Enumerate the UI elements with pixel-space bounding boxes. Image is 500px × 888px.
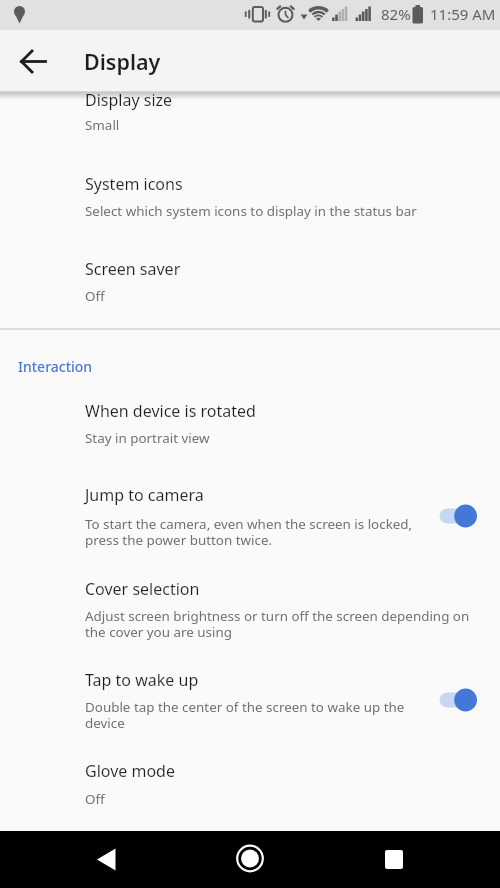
staticText: Tap to wake up [85,669,199,691]
staticText: To start the camera, even when the scree… [85,515,413,549]
staticText: 82% [381,4,411,24]
button[interactable]: Display size [0,91,500,149]
staticText: Off [85,287,105,305]
staticText: 11:59 AM [430,4,496,24]
staticText: Jump to camera [85,484,204,506]
staticText: Adjust screen brightness or turn off the… [85,607,470,641]
staticText: Display size [85,89,173,111]
button[interactable] [70,831,160,888]
button[interactable]: When device is rotated [0,385,500,457]
staticText: Small [85,116,120,134]
button[interactable] [205,831,295,888]
button[interactable]: Tap to wake up [0,655,500,745]
button[interactable]: Jump to camera [0,470,500,560]
staticText: Screen saver [85,258,181,280]
staticText: Off [85,790,105,808]
staticText: When device is rotated [85,400,256,422]
staticText: System icons [85,173,183,195]
staticText: Stay in portrait view [85,429,210,447]
button[interactable] [349,831,439,888]
staticText: Double tap the center of the screen to w… [85,698,405,732]
staticText: Glove mode [85,760,175,782]
button[interactable]: System icons [0,155,500,227]
button[interactable] [14,46,52,78]
button[interactable]: Screen saver [0,240,500,312]
button[interactable]: Glove mode [0,750,500,825]
staticText: Select which system icons to display in … [85,202,417,220]
staticText: Interaction [18,357,93,376]
staticText: Display [84,47,161,76]
button[interactable]: Cover selection [0,565,500,653]
staticText: Cover selection [85,578,200,600]
